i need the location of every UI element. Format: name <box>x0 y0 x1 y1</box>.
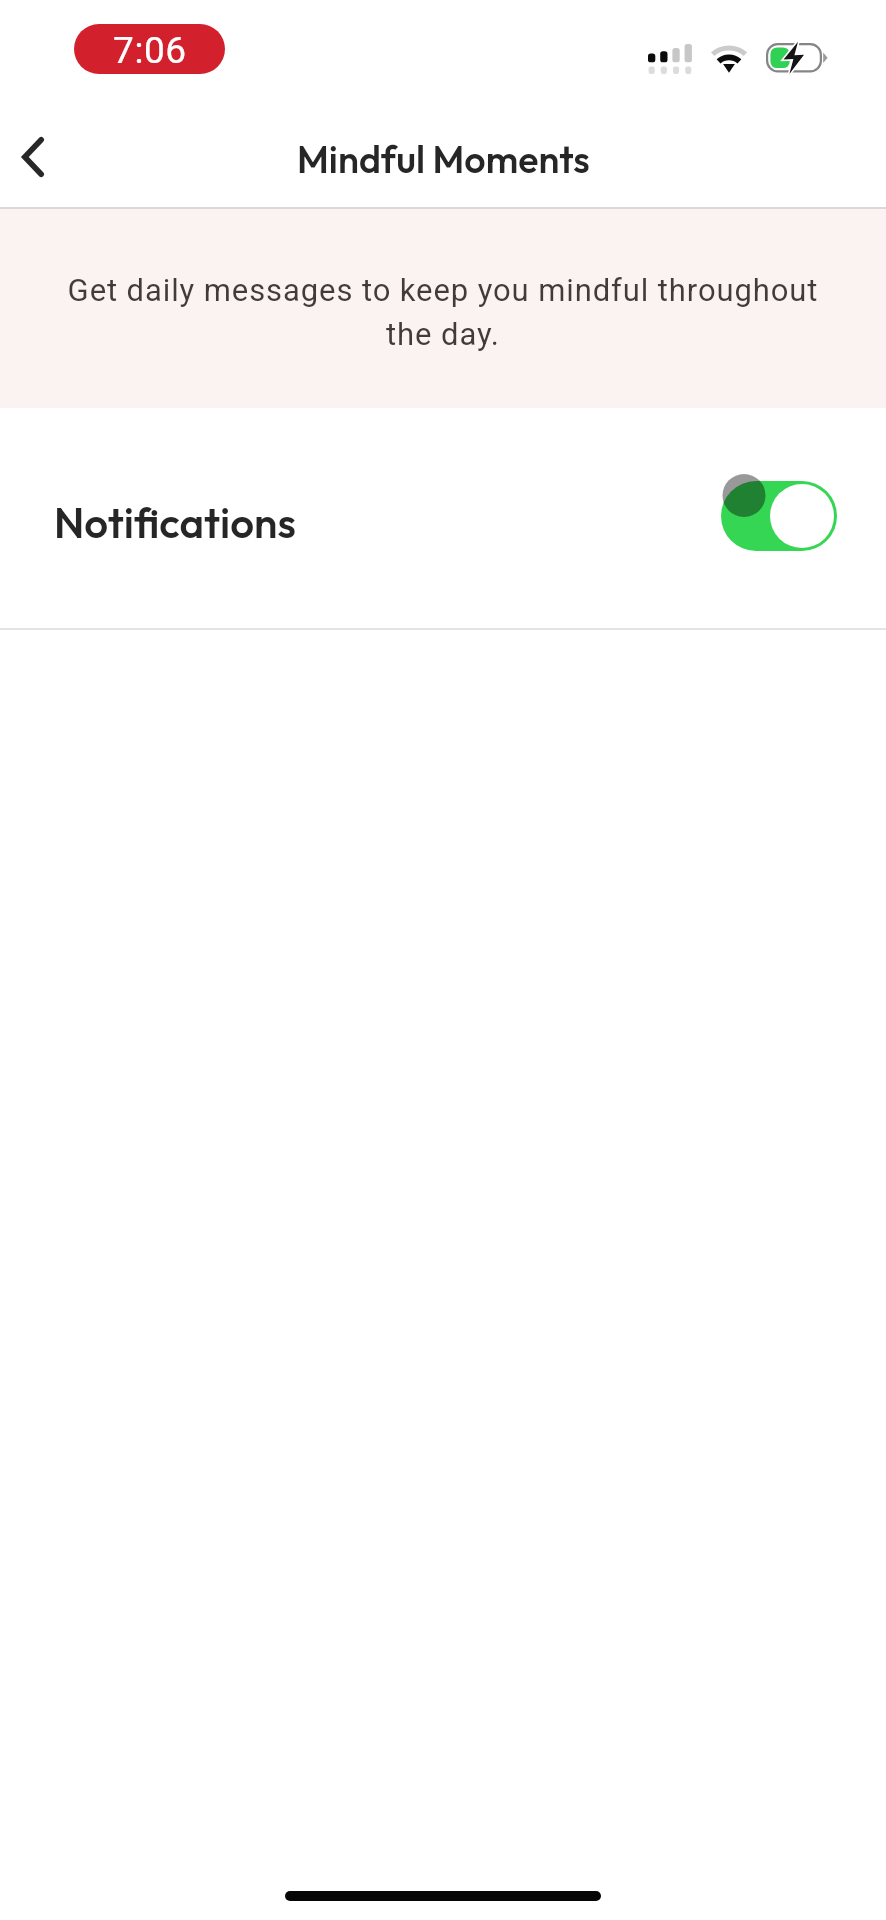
staticText: 7:06 <box>113 29 187 72</box>
button[interactable]: Notifications <box>0 408 886 628</box>
button[interactable]: Back <box>0 117 64 197</box>
staticText: Get daily messages to keep you mindful t… <box>56 272 830 352</box>
staticText: Mindful Moments <box>297 135 590 182</box>
button[interactable]: Notifications toggle, on <box>721 481 837 551</box>
staticText: Notifications <box>54 496 296 549</box>
